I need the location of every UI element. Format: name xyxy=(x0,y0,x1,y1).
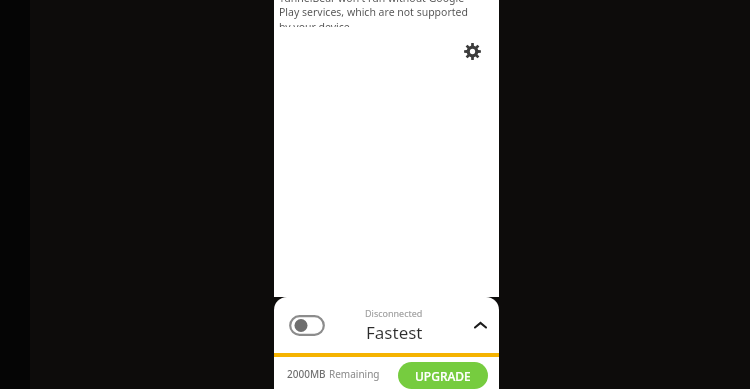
button[interactable]: VPN toggle, off xyxy=(289,315,325,336)
button[interactable]: VPN toggle, off xyxy=(274,297,499,353)
staticText: Disconnected xyxy=(365,307,423,319)
button[interactable]: Expand xyxy=(467,312,493,338)
staticText: Remaining xyxy=(329,367,380,381)
button[interactable]: UPGRADE xyxy=(398,362,488,389)
button[interactable]: Settings xyxy=(457,36,487,66)
staticText: UPGRADE xyxy=(415,368,471,384)
staticText: Fastest xyxy=(366,321,423,344)
staticText: TunnelBear won't run without Google Play… xyxy=(279,0,471,27)
staticText: 2000MB xyxy=(287,367,326,381)
